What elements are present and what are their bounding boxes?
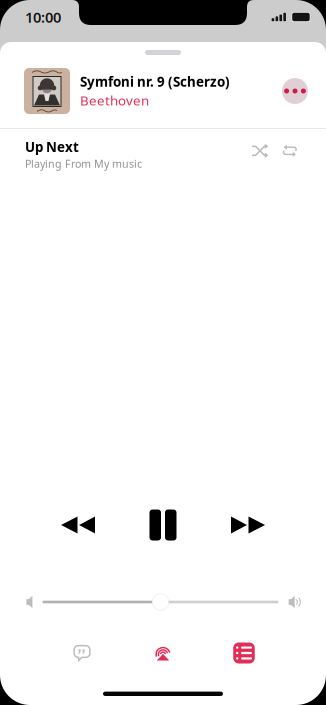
button[interactable]: Pause <box>136 503 190 547</box>
button[interactable]: Queue <box>218 636 270 670</box>
staticText: Symfoni nr. 9 (Scherzo) <box>80 73 230 90</box>
staticText: 10:00 <box>25 7 61 27</box>
button[interactable]: Repeat <box>275 136 305 166</box>
button[interactable]: AirPlay <box>137 636 189 670</box>
button[interactable]: Lyrics <box>56 636 108 670</box>
staticText: Up Next <box>25 138 79 156</box>
staticText: Playing From My music <box>25 157 142 171</box>
staticText: Beethoven <box>80 91 149 109</box>
button[interactable]: Previous track <box>46 503 110 547</box>
button[interactable]: More options <box>277 73 313 109</box>
button[interactable]: Next track <box>216 503 280 547</box>
button[interactable]: Shuffle <box>245 136 275 166</box>
